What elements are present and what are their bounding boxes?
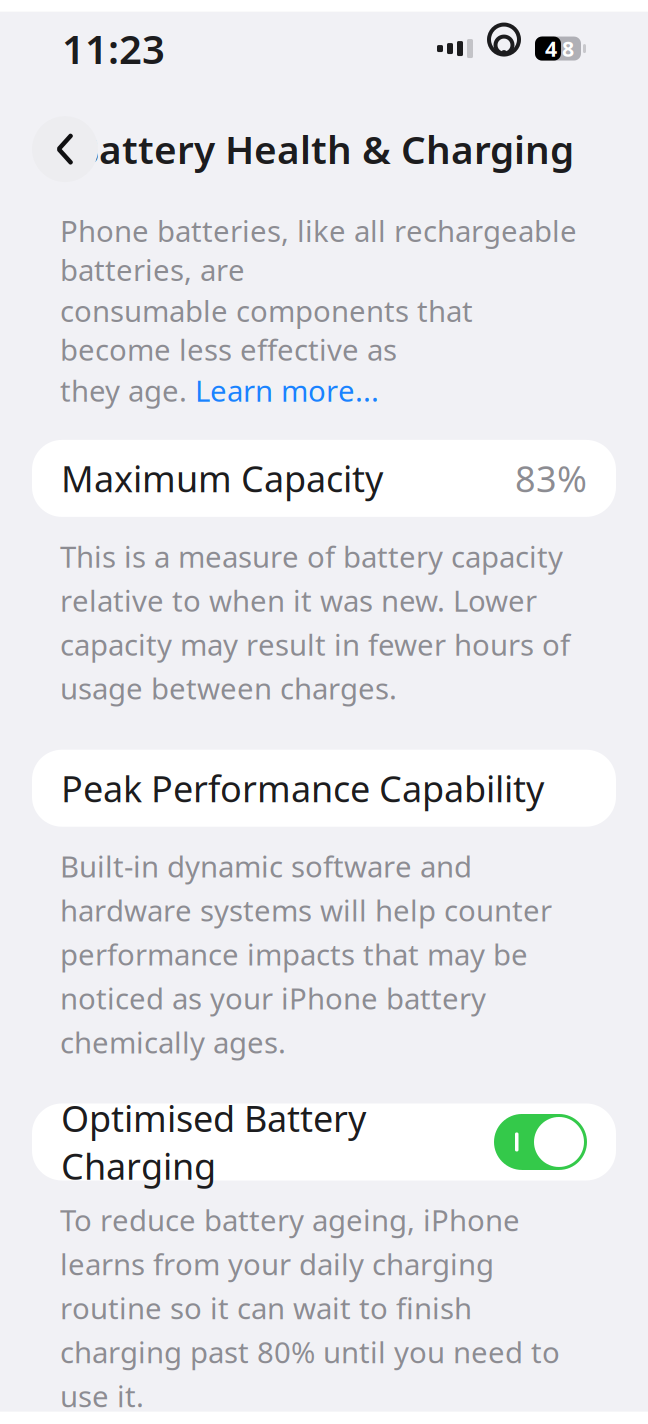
staticText: Built-in dynamic software and hardware s… <box>60 847 552 1061</box>
staticText: Peak Performance Capability <box>61 764 544 812</box>
button[interactable]: Peak Performance Capability <box>32 750 616 827</box>
staticText: To reduce battery ageing, iPhone learns … <box>60 1200 560 1415</box>
staticText: This is a measure of battery capacity re… <box>60 537 570 708</box>
staticText: 4 <box>545 34 557 63</box>
staticText: consumable components that become less e… <box>60 291 473 369</box>
staticText: 11:23 <box>62 22 165 75</box>
staticText: 8 <box>562 34 574 63</box>
staticText: they age. <box>60 371 195 410</box>
button[interactable]: Learn more... <box>195 371 379 410</box>
button[interactable]: Back <box>32 116 98 182</box>
button[interactable]: Optimised Battery Charging <box>32 1103 616 1180</box>
staticText: Phone batteries, like all rechargeable b… <box>60 211 577 289</box>
staticText: Optimised Battery Charging <box>61 1094 366 1190</box>
button[interactable]: Optimised Battery Charging toggle <box>494 1114 587 1170</box>
button[interactable]: Maximum Capacity <box>32 440 616 517</box>
staticText: Battery Health & Charging <box>74 123 574 175</box>
staticText: Maximum Capacity <box>61 454 383 502</box>
staticText: 83% <box>515 454 587 502</box>
staticText: Learn more... <box>195 371 379 410</box>
